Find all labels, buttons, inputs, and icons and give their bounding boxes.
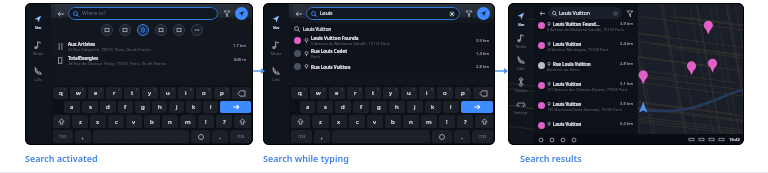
button[interactable]: d — [335, 101, 351, 113]
button[interactable]: ?123 — [291, 130, 312, 143]
button[interactable]: Navigate — [477, 7, 490, 20]
button[interactable]: ?123 — [230, 130, 251, 143]
button[interactable]: g — [371, 101, 387, 113]
button[interactable]: Calls — [263, 61, 289, 87]
button[interactable]: o — [437, 87, 453, 99]
button[interactable]: w — [70, 87, 86, 99]
button[interactable]: Quick action 4 — [571, 137, 577, 143]
button[interactable]: Nav — [263, 9, 289, 35]
button[interactable]: i — [178, 87, 194, 99]
button[interactable]: ?123 — [472, 130, 493, 143]
button[interactable]: Filter — [222, 9, 232, 19]
button[interactable]: Louis Vuitton Founda — [289, 34, 495, 47]
button[interactable]: Louis Vuitton Found... — [534, 19, 638, 39]
button[interactable]: i — [419, 87, 435, 99]
button[interactable]: c — [108, 115, 124, 128]
button[interactable]: x — [90, 115, 106, 128]
button[interactable]: g — [135, 101, 150, 113]
button[interactable]: , — [75, 130, 91, 143]
button[interactable]: ? — [457, 115, 473, 128]
button[interactable]: . — [212, 130, 228, 143]
button[interactable]: f — [353, 101, 369, 113]
button[interactable]: Quick action 1 — [538, 137, 544, 143]
button[interactable]: ?123 — [53, 130, 73, 143]
button[interactable]: a — [300, 101, 315, 113]
button[interactable]: y — [142, 87, 158, 99]
button[interactable]: v — [367, 115, 383, 128]
button[interactable]: Filter — [464, 9, 474, 19]
button[interactable]: Calls — [508, 52, 534, 74]
button[interactable]: Settings — [508, 96, 534, 118]
button[interactable]: Rue Louis Vuitton — [534, 59, 638, 79]
button[interactable]: Aux Artistes — [51, 39, 253, 53]
button[interactable]: q — [291, 87, 308, 99]
button[interactable]: k — [425, 101, 441, 113]
button[interactable]: p — [214, 87, 230, 99]
button[interactable]: h — [152, 101, 167, 113]
button[interactable]: Shift — [291, 115, 310, 128]
button[interactable]: ? — [216, 115, 232, 128]
button[interactable]: k — [186, 101, 201, 113]
button[interactable]: Category 5 — [173, 24, 185, 36]
button[interactable]: Louis Vuitton — [534, 119, 638, 131]
button[interactable]: Louis — [306, 7, 460, 20]
button[interactable]: Louis Vuitton — [548, 7, 622, 19]
button[interactable]: s — [317, 101, 333, 113]
button[interactable]: Back — [538, 9, 546, 17]
button[interactable]: Enter — [220, 101, 251, 113]
button[interactable]: c — [349, 115, 365, 128]
button[interactable]: Media — [263, 35, 289, 61]
button[interactable]: Category 3 — [137, 24, 149, 36]
button[interactable]: Category 1 — [101, 24, 113, 36]
button[interactable]: Where to? — [68, 7, 218, 20]
button[interactable]: z — [312, 115, 329, 128]
button[interactable]: Climate — [508, 74, 534, 96]
button[interactable]: f — [118, 101, 133, 113]
button[interactable]: , — [314, 130, 330, 143]
button[interactable]: j — [407, 101, 423, 113]
button[interactable]: h — [389, 101, 405, 113]
button[interactable]: m — [421, 115, 437, 128]
button[interactable]: p — [455, 87, 471, 99]
button[interactable]: Quick action 3 — [560, 137, 566, 143]
button[interactable]: n — [403, 115, 419, 128]
button[interactable]: r — [347, 87, 363, 99]
button[interactable]: n — [162, 115, 178, 128]
button[interactable]: Shift — [475, 115, 493, 128]
button[interactable]: a — [64, 101, 80, 113]
button[interactable]: l — [443, 101, 459, 113]
button[interactable]: Language — [432, 130, 452, 143]
button[interactable]: u — [160, 87, 176, 99]
button[interactable]: w — [310, 87, 327, 99]
button[interactable]: Media — [25, 35, 51, 61]
button[interactable]: . — [454, 130, 470, 143]
button[interactable]: Backspace — [473, 87, 493, 99]
button[interactable]: Language — [191, 130, 210, 143]
button[interactable]: b — [144, 115, 160, 128]
button[interactable]: j — [169, 101, 184, 113]
button[interactable]: Louis Vuitton — [534, 39, 638, 59]
button[interactable]: s — [82, 101, 98, 113]
button[interactable]: x — [331, 115, 347, 128]
button[interactable]: l — [203, 101, 218, 113]
button[interactable]: r — [106, 87, 122, 99]
button[interactable]: z — [72, 115, 88, 128]
button[interactable]: Category 6 — [191, 24, 203, 36]
button[interactable]: e — [329, 87, 345, 99]
button[interactable]: Shift — [234, 115, 251, 128]
button[interactable]: Media — [508, 30, 534, 52]
button[interactable]: y — [383, 87, 399, 99]
button[interactable]: Category 2 — [119, 24, 131, 36]
button[interactable]: b — [385, 115, 401, 128]
button[interactable]: Calls — [25, 61, 51, 87]
button[interactable]: m — [180, 115, 196, 128]
button[interactable]: Back — [56, 9, 65, 18]
button[interactable]: ! — [198, 115, 214, 128]
button[interactable]: Category 4 — [155, 24, 167, 36]
button[interactable]: v — [126, 115, 142, 128]
button[interactable]: Nav — [508, 8, 534, 30]
button[interactable]: Louis Vuitton — [289, 23, 495, 34]
button[interactable]: Backspace — [232, 87, 251, 99]
